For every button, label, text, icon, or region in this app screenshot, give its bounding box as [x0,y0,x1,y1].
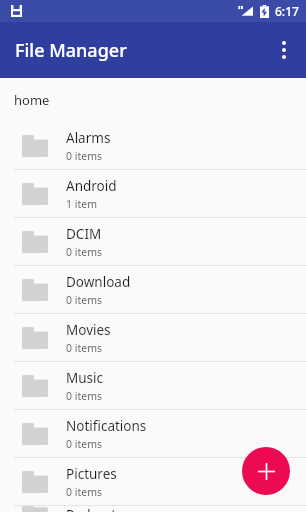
staticText: Alarms [66,129,111,147]
staticText: 0 items [66,149,103,163]
staticText: 0 items [66,245,103,259]
button[interactable]: Pictures [0,458,306,505]
button[interactable]: Alarms [0,122,306,169]
staticText: DCIM [66,225,102,243]
staticText: Music [66,369,104,387]
button[interactable]: Movies [0,314,306,361]
button[interactable]: Podcasts [0,506,306,512]
button[interactable]: Add [242,447,290,495]
button[interactable]: Android [0,170,306,217]
staticText: 0 items [66,437,103,451]
button[interactable]: Music [0,362,306,409]
staticText: 1 item [66,197,97,211]
staticText: File Manager [15,38,127,63]
staticText: 6:17 [275,3,299,19]
button[interactable]: More options [262,28,306,72]
staticText: 0 items [66,485,103,499]
staticText: Movies [66,321,111,339]
button[interactable]: Download [0,266,306,313]
staticText: home [14,91,50,109]
button[interactable]: Notifications [0,410,306,457]
staticText: Podcasts [66,506,123,512]
staticText: 0 items [66,341,103,355]
staticText: Android [66,177,117,195]
staticText: 0 items [66,389,103,403]
staticText: Download [66,273,131,291]
button[interactable]: home [0,78,306,122]
staticText: 0 items [66,293,103,307]
staticText: Notifications [66,417,147,435]
button[interactable]: DCIM [0,218,306,265]
staticText: Pictures [66,465,117,483]
